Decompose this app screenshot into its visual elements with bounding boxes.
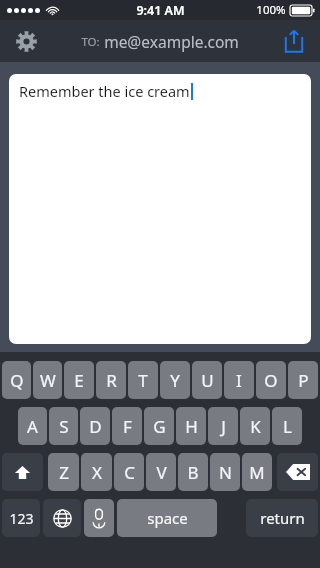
button[interactable]: space bbox=[117, 499, 217, 537]
button[interactable]: Q bbox=[2, 361, 31, 399]
staticText: L bbox=[283, 415, 292, 438]
staticText: T bbox=[138, 369, 148, 392]
button[interactable]: Dictate bbox=[84, 499, 114, 537]
button[interactable]: W bbox=[33, 361, 62, 399]
button[interactable]: 123 bbox=[2, 499, 40, 537]
button[interactable]: V bbox=[146, 453, 176, 491]
staticText: S bbox=[59, 415, 69, 438]
button[interactable]: Shift bbox=[2, 453, 43, 491]
button[interactable]: J bbox=[208, 407, 238, 445]
staticText: B bbox=[187, 461, 199, 484]
button[interactable]: M bbox=[242, 453, 272, 491]
button[interactable]: I bbox=[224, 361, 254, 399]
button[interactable]: N bbox=[210, 453, 240, 491]
staticText: R bbox=[106, 369, 117, 392]
staticText: N bbox=[219, 461, 232, 484]
button[interactable]: Backspace bbox=[277, 453, 318, 491]
staticText: H bbox=[185, 415, 198, 438]
staticText: Remember the ice cream bbox=[19, 81, 190, 101]
button[interactable]: L bbox=[272, 407, 302, 445]
button[interactable]: T bbox=[128, 361, 158, 399]
button[interactable]: X bbox=[81, 453, 112, 491]
staticText: I bbox=[236, 369, 242, 392]
staticText: space bbox=[147, 508, 188, 528]
button[interactable]: O bbox=[256, 361, 286, 399]
staticText: X bbox=[92, 461, 102, 484]
staticText: 123 bbox=[9, 509, 34, 528]
staticText: V bbox=[156, 461, 167, 484]
staticText: Z bbox=[59, 461, 69, 484]
button[interactable]: D bbox=[80, 407, 110, 445]
staticText: me@example.com bbox=[104, 31, 239, 52]
button[interactable]: R bbox=[96, 361, 126, 399]
staticText: return bbox=[260, 508, 305, 528]
button[interactable]: K bbox=[240, 407, 270, 445]
button[interactable]: Share bbox=[277, 24, 311, 58]
button[interactable]: G bbox=[144, 407, 174, 445]
button[interactable]: Settings bbox=[8, 23, 44, 59]
staticText: M bbox=[249, 461, 265, 484]
staticText: J bbox=[221, 415, 226, 438]
button[interactable]: E bbox=[64, 361, 94, 399]
staticText: Q bbox=[10, 369, 24, 392]
staticText: P bbox=[298, 369, 309, 392]
button[interactable]: S bbox=[49, 407, 78, 445]
staticText: G bbox=[153, 415, 166, 438]
staticText: 9:41 AM bbox=[136, 2, 185, 19]
button[interactable]: A bbox=[18, 407, 47, 445]
button[interactable]: Y bbox=[160, 361, 190, 399]
staticText: O bbox=[264, 369, 278, 392]
button[interactable]: H bbox=[176, 407, 206, 445]
button[interactable]: F bbox=[112, 407, 142, 445]
staticText: A bbox=[27, 415, 38, 438]
button[interactable]: Remember the ice cream bbox=[9, 74, 311, 344]
staticText: Y bbox=[170, 369, 180, 392]
button[interactable]: Change keyboard bbox=[43, 499, 81, 537]
button[interactable]: B bbox=[178, 453, 208, 491]
staticText: 100% bbox=[256, 2, 286, 18]
staticText: K bbox=[250, 415, 261, 438]
button[interactable]: Z bbox=[48, 453, 79, 491]
staticText: D bbox=[89, 415, 102, 438]
staticText: W bbox=[40, 369, 56, 392]
button[interactable]: P bbox=[288, 361, 318, 399]
staticText: U bbox=[201, 369, 214, 392]
staticText: TO: bbox=[81, 34, 100, 50]
staticText: F bbox=[123, 415, 132, 438]
button[interactable]: U bbox=[192, 361, 222, 399]
staticText: C bbox=[124, 461, 135, 484]
button[interactable]: return bbox=[246, 499, 318, 537]
button[interactable]: C bbox=[114, 453, 144, 491]
staticText: E bbox=[74, 369, 84, 392]
